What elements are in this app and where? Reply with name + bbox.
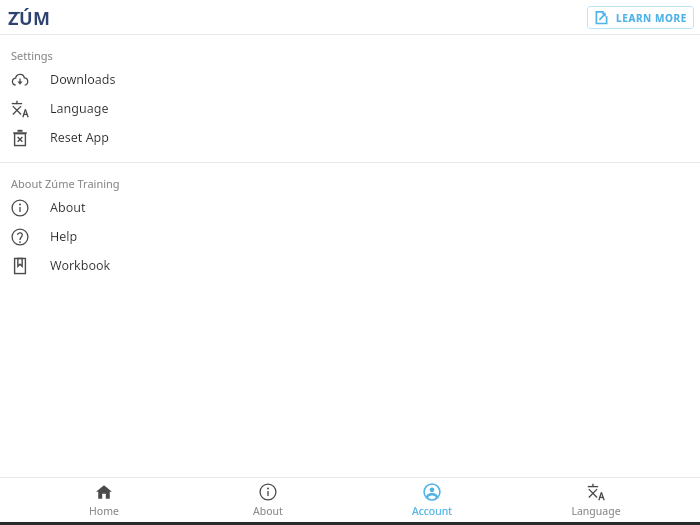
staticText: Help xyxy=(50,228,78,245)
staticText: Settings xyxy=(11,48,53,63)
button[interactable]: Account xyxy=(372,480,492,521)
button[interactable]: Help xyxy=(0,222,700,251)
staticText: Reset App xyxy=(50,129,109,146)
staticText: Downloads xyxy=(50,71,116,88)
staticText: ZÚME xyxy=(8,6,56,28)
button[interactable]: Downloads xyxy=(0,65,700,94)
button[interactable]: Reset App xyxy=(0,123,700,152)
button[interactable]: Language xyxy=(536,480,656,521)
staticText: About xyxy=(253,504,283,518)
button[interactable]: Language xyxy=(0,94,700,123)
button[interactable]: LEARN MORE xyxy=(587,6,694,29)
staticText: Workbook xyxy=(50,257,111,274)
staticText: LEARN MORE xyxy=(616,11,687,25)
button[interactable]: Home xyxy=(44,480,164,521)
staticText: About Zúme Training xyxy=(11,176,120,191)
staticText: Account xyxy=(412,504,452,518)
staticText: Home xyxy=(89,504,119,518)
button[interactable]: About xyxy=(0,193,700,222)
staticText: Language xyxy=(571,504,621,518)
button[interactable]: About xyxy=(208,480,328,521)
button[interactable]: Workbook xyxy=(0,251,700,280)
staticText: Language xyxy=(50,100,109,117)
staticText: About xyxy=(50,199,86,216)
